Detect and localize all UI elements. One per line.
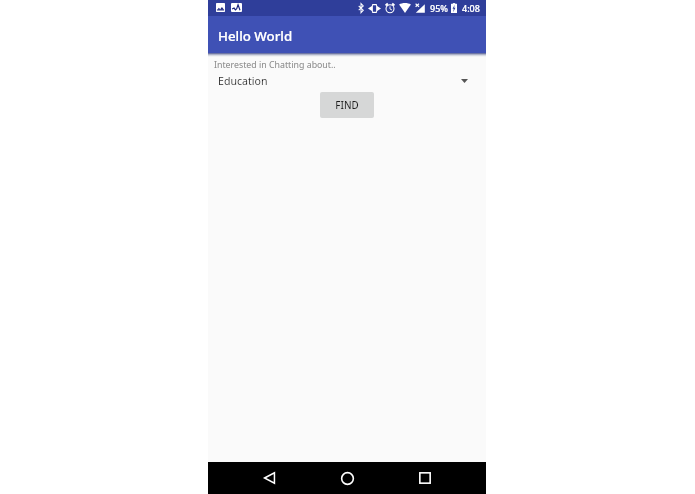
staticText: Hello World <box>218 27 293 45</box>
button[interactable]: FIND <box>320 92 374 118</box>
staticText: Education <box>218 74 268 88</box>
staticText: Interested in Chatting about.. <box>214 59 336 71</box>
staticText: 4:08 <box>462 2 480 14</box>
button[interactable]: Home <box>333 462 361 494</box>
button[interactable]: Education <box>208 74 486 88</box>
button[interactable]: Recents <box>411 462 439 494</box>
staticText: 95% <box>430 2 448 14</box>
button[interactable]: Back <box>255 462 283 494</box>
staticText: FIND <box>335 99 359 112</box>
